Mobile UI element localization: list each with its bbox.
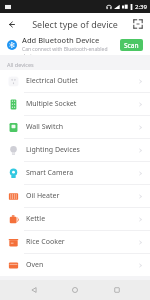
staticText: 2:39: [135, 3, 147, 11]
staticText: Multiple Socket: [26, 99, 138, 109]
staticText: Select type of device: [32, 18, 118, 30]
button[interactable]: Electrical Outlet: [0, 70, 150, 92]
button[interactable]: Home: [67, 282, 83, 298]
button[interactable]: Recents: [109, 282, 125, 298]
button[interactable]: Scan: [120, 39, 143, 51]
button[interactable]: Oven: [0, 254, 150, 276]
staticText: Oil Heater: [26, 191, 138, 201]
staticText: Oven: [26, 260, 138, 270]
button[interactable]: Kettle: [0, 208, 150, 230]
staticText: All devices: [7, 61, 34, 68]
staticText: Smart Camera: [26, 168, 138, 178]
staticText: Kettle: [26, 214, 138, 224]
button[interactable]: Back: [26, 282, 42, 298]
button[interactable]: Lighting Devices: [0, 139, 150, 161]
button[interactable]: Multiple Socket: [0, 93, 150, 115]
button[interactable]: Scan QR code: [129, 15, 147, 33]
button[interactable]: Add Bluetooth Device: [0, 35, 150, 55]
staticText: Can connect with Bluetooth-enabled devic…: [22, 46, 117, 55]
staticText: Lighting Devices: [26, 145, 138, 155]
button[interactable]: Wall Switch: [0, 116, 150, 138]
button[interactable]: Back: [3, 15, 21, 33]
staticText: Scan: [124, 41, 139, 50]
button[interactable]: Oil Heater: [0, 185, 150, 207]
staticText: Electrical Outlet: [26, 76, 138, 86]
button[interactable]: Rice Cooker: [0, 231, 150, 253]
staticText: Wall Switch: [26, 122, 138, 132]
staticText: Rice Cooker: [26, 237, 138, 247]
button[interactable]: Smart Camera: [0, 162, 150, 184]
staticText: Add Bluetooth Device: [22, 35, 100, 45]
